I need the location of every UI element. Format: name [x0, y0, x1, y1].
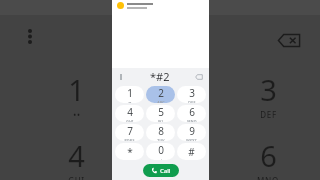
- staticText: PQRS: [124, 138, 135, 141]
- button[interactable]: Call: [143, 164, 179, 177]
- staticText: MNO: [257, 175, 279, 180]
- staticText: DEF: [188, 100, 196, 103]
- staticText: 4: [68, 136, 85, 175]
- staticText: ABC: [157, 100, 165, 103]
- staticText: 5: [158, 105, 164, 119]
- button[interactable]: 1: [44, 70, 108, 118]
- button[interactable]: 3: [236, 70, 300, 118]
- staticText: 8: [158, 124, 164, 138]
- button[interactable]: *: [115, 143, 144, 160]
- button[interactable]: 2: [146, 86, 175, 103]
- button[interactable]: Backspace: [193, 71, 205, 83]
- button[interactable]: 8: [146, 124, 175, 141]
- staticText: 9: [189, 124, 195, 138]
- button[interactable]: 4: [115, 105, 144, 122]
- button[interactable]: 1: [115, 86, 144, 103]
- staticText: WXYZ: [186, 138, 197, 141]
- staticText: ••: [128, 100, 132, 103]
- staticText: *: [127, 145, 133, 159]
- button[interactable]: 6: [177, 105, 206, 122]
- staticText: MNO: [187, 119, 197, 122]
- staticText: *#2: [150, 69, 170, 84]
- staticText: GHI: [126, 119, 134, 122]
- button[interactable]: 3: [177, 86, 206, 103]
- staticText: 1: [127, 86, 133, 100]
- staticText: 6: [260, 136, 277, 175]
- staticText: 6: [189, 105, 195, 119]
- button[interactable]: More options: [116, 72, 126, 82]
- staticText: ••: [73, 109, 81, 118]
- staticText: 3: [189, 86, 195, 100]
- staticText: +: [160, 157, 163, 160]
- staticText: 2: [158, 86, 164, 100]
- button[interactable]: 9: [177, 124, 206, 141]
- button[interactable]: Backspace: [274, 30, 304, 50]
- button[interactable]: #: [177, 143, 206, 160]
- staticText: #: [188, 145, 195, 159]
- staticText: Call: [160, 167, 171, 175]
- button[interactable]: 0: [146, 143, 175, 160]
- staticText: TUV: [157, 138, 165, 141]
- button[interactable]: More options: [20, 26, 40, 46]
- button[interactable]: 4: [44, 136, 108, 180]
- staticText: GHI: [68, 175, 85, 180]
- staticText: DEF: [260, 109, 277, 118]
- staticText: 4: [127, 105, 133, 119]
- button[interactable]: 7: [115, 124, 144, 141]
- staticText: JKL: [158, 119, 164, 122]
- staticText: 1: [68, 70, 85, 109]
- staticText: 0: [158, 143, 164, 157]
- button[interactable]: 5: [146, 105, 175, 122]
- staticText: 7: [127, 124, 133, 138]
- staticText: 3: [260, 70, 277, 109]
- button[interactable]: 6: [236, 136, 300, 180]
